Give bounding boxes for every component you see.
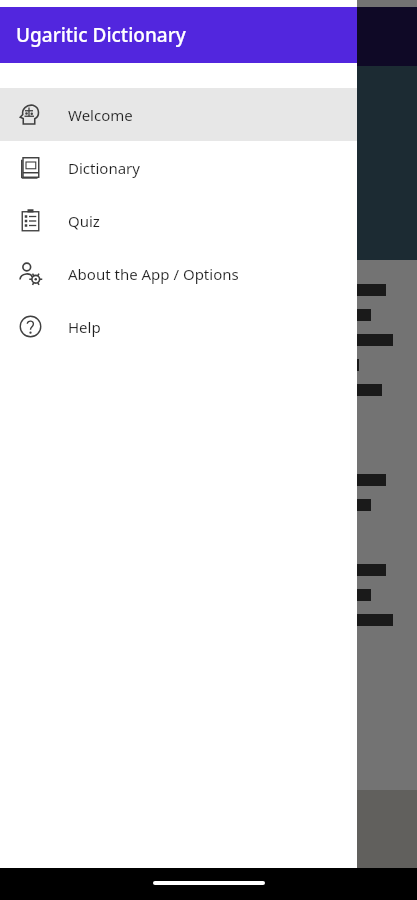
staticText: About the App / Options [68, 264, 239, 284]
staticText: Quiz [68, 211, 100, 231]
button[interactable]: About [0, 247, 357, 300]
staticText: Welcome [68, 105, 133, 125]
staticText: Dictionary [68, 158, 140, 178]
staticText: Help [68, 317, 101, 337]
staticText: Ugaritic Dictionary [16, 22, 186, 48]
button[interactable]: Quiz [0, 194, 357, 247]
button[interactable]: Dictionary [0, 141, 357, 194]
button[interactable]: Welcome [0, 88, 357, 141]
button[interactable]: Help [0, 300, 357, 353]
